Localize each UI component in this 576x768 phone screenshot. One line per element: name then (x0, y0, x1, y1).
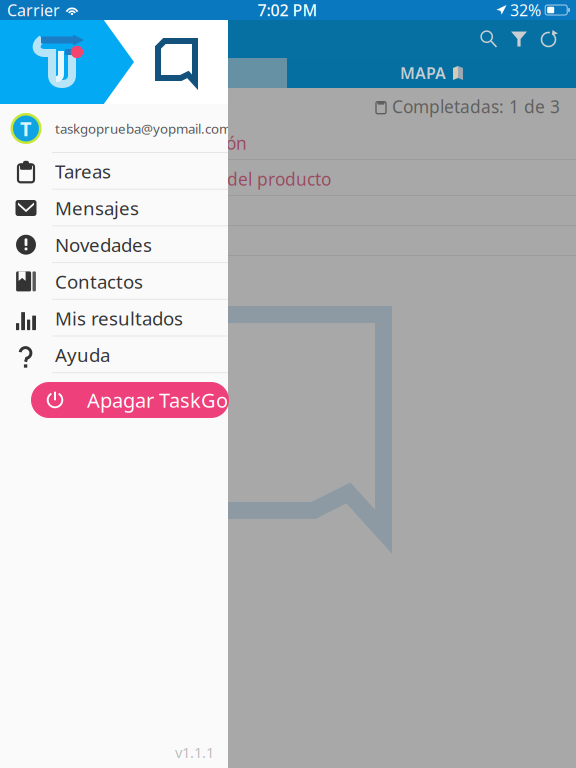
staticText: v1.1.1 (175, 742, 214, 762)
button[interactable]: Ayuda (0, 336, 228, 373)
staticText: taskgoprueba@yopmail.com (55, 120, 231, 137)
button[interactable]: MAPA (287, 58, 576, 88)
staticText: Novedades (55, 232, 152, 257)
button[interactable]: T (0, 104, 228, 153)
button[interactable]: Filtrar (504, 20, 534, 58)
staticText: Tareas (55, 159, 111, 184)
staticText: Cambio del producto (160, 167, 331, 190)
staticText: LISTA (112, 62, 155, 84)
staticText: MAPA (400, 62, 446, 84)
staticText: Mis resultados (55, 306, 183, 331)
button[interactable]: Actualizar (534, 20, 564, 58)
button[interactable]: Apagar TaskGo (31, 382, 229, 418)
staticText: T (20, 115, 32, 142)
button[interactable]: LISTA (0, 58, 287, 88)
staticText: Apagar TaskGo (87, 387, 228, 413)
button[interactable]: Tareas (0, 153, 228, 190)
staticText: 7:02 PM (257, 0, 317, 21)
staticText: Carrier (7, 0, 60, 21)
button[interactable] (0, 226, 576, 256)
staticText: 32% (510, 0, 541, 21)
staticText: Contactos (55, 269, 143, 294)
staticText: Mensajes (55, 196, 139, 220)
staticText: Completadas: 1 de 3 (392, 95, 560, 118)
button[interactable]: Cambio del producto (0, 160, 576, 196)
button[interactable]: Mensajes (0, 190, 228, 226)
staticText: Ayuda (55, 342, 110, 367)
button[interactable]: Buscar (474, 20, 504, 58)
button[interactable]: Mis resultados (0, 300, 228, 336)
button[interactable]: Reposición (0, 124, 576, 160)
staticText: Reposición (160, 131, 247, 154)
button[interactable] (0, 196, 576, 226)
button[interactable]: Contactos (0, 263, 228, 300)
button[interactable]: Novedades (0, 226, 228, 263)
